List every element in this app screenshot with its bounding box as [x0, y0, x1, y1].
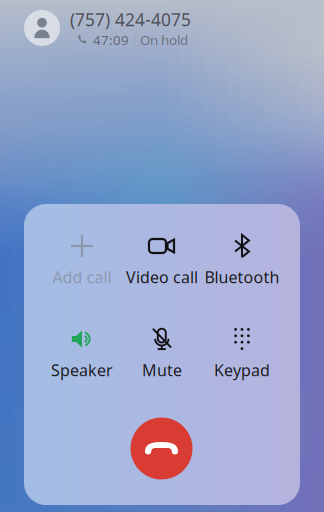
button[interactable]: Bluetooth — [202, 230, 282, 292]
button[interactable]: Speaker — [42, 323, 122, 385]
staticText: (757) 424-4075 — [70, 8, 191, 31]
staticText: On hold — [140, 31, 188, 49]
button[interactable]: End call — [130, 417, 192, 479]
staticText: / — [132, 31, 140, 49]
button[interactable]: Mute — [122, 323, 202, 385]
staticText: Video call — [126, 266, 198, 288]
button[interactable]: Video call — [122, 230, 202, 292]
staticText: 47:09 — [87, 31, 132, 49]
staticText: Speaker — [51, 359, 113, 381]
staticText: Keypad — [214, 359, 270, 381]
staticText: Add call — [52, 266, 111, 288]
staticText: Mute — [142, 359, 182, 381]
staticText: Bluetooth — [204, 266, 279, 288]
button[interactable]: Add call — [42, 230, 122, 292]
button[interactable]: Keypad — [202, 323, 282, 385]
